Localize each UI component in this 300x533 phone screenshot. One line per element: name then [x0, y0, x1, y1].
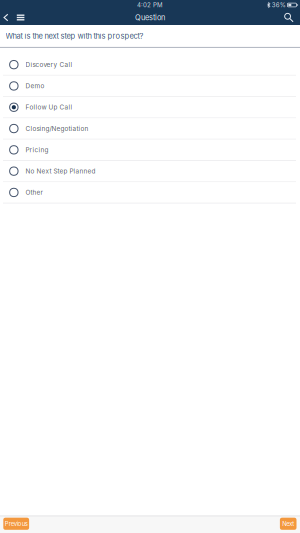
staticText: Pricing — [25, 146, 48, 154]
button[interactable]: Menu — [14, 10, 27, 25]
staticText: Next — [282, 520, 294, 527]
staticText: Closing/Negotiation — [25, 125, 88, 132]
button[interactable]: Previous — [3, 518, 29, 530]
staticText: Demo — [25, 82, 44, 90]
staticText: What is the next step with this prospect… — [5, 31, 143, 40]
button[interactable]: Discovery Call — [0, 54, 300, 76]
staticText: Discovery Call — [25, 61, 72, 68]
staticText: Question — [135, 13, 165, 22]
staticText: Follow Up Call — [25, 103, 72, 111]
staticText: 36% — [272, 1, 286, 9]
button[interactable]: Pricing — [0, 140, 300, 161]
button[interactable]: Follow Up Call — [0, 97, 300, 118]
button[interactable]: Other — [0, 182, 300, 204]
button[interactable]: Search — [282, 10, 296, 25]
button[interactable]: Back — [0, 10, 12, 25]
staticText: No Next Step Planned — [25, 167, 95, 175]
staticText: Previous — [5, 520, 28, 527]
staticText: 4:02 PM — [137, 1, 163, 9]
button[interactable]: Demo — [0, 76, 300, 97]
staticText: Other — [25, 189, 42, 196]
button[interactable]: Next — [280, 518, 296, 530]
button[interactable]: Closing/Negotiation — [0, 118, 300, 140]
button[interactable]: No Next Step Planned — [0, 161, 300, 182]
